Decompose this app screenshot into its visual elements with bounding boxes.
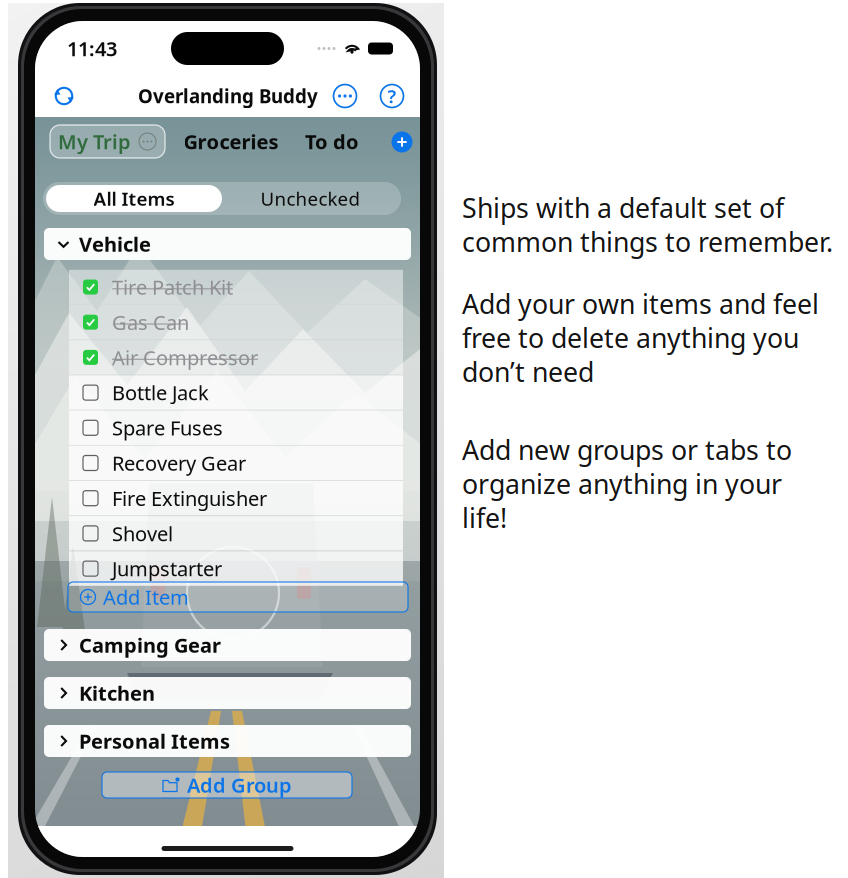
staticText: Shovel [112, 520, 173, 547]
staticText: Overlanding Buddy [138, 84, 318, 108]
staticText: don’t need [462, 354, 594, 389]
button[interactable]: Help [376, 80, 408, 112]
button[interactable]: Recovery Gear [69, 446, 403, 480]
button[interactable]: Camping Gear [44, 629, 411, 661]
staticText: Personal Items [79, 728, 230, 754]
button[interactable]: Kitchen [44, 677, 411, 709]
button[interactable]: Fire Extinguisher [69, 481, 403, 515]
staticText: Ships with a default set of [462, 190, 784, 225]
button[interactable]: Tire Patch Kit [69, 270, 403, 304]
staticText: life! [462, 500, 507, 535]
button[interactable]: More options [329, 80, 361, 112]
staticText: Add new groups or tabs to [462, 432, 792, 467]
button[interactable]: To do [299, 125, 365, 158]
button[interactable]: Add Group [102, 772, 352, 798]
button[interactable]: Shovel [69, 516, 403, 551]
button[interactable]: Spare Fuses [69, 411, 403, 445]
staticText: Recovery Gear [112, 450, 246, 476]
button[interactable]: Gas Can [69, 305, 403, 339]
staticText: 11:43 [67, 35, 117, 62]
staticText: Air Compressor [112, 344, 258, 371]
staticText: Add Item [103, 584, 189, 610]
staticText: Vehicle [79, 231, 151, 257]
staticText: Camping Gear [79, 632, 221, 658]
staticText: Groceries [183, 128, 278, 155]
staticText: Spare Fuses [112, 414, 223, 441]
button[interactable]: Personal Items [44, 725, 411, 757]
button[interactable]: Add tab [389, 129, 415, 155]
button[interactable]: All Items [46, 185, 222, 212]
staticText: Add your own items and feel [462, 286, 819, 321]
staticText: Bottle Jack [112, 379, 209, 406]
staticText: Gas Can [112, 309, 189, 335]
staticText: ? [387, 84, 396, 108]
button[interactable]: Unchecked [222, 185, 398, 212]
button[interactable]: Vehicle [44, 228, 411, 260]
staticText: All Items [93, 186, 174, 211]
button[interactable]: Air Compressor [69, 340, 403, 375]
staticText: Add Group [187, 772, 292, 798]
button[interactable]: Add Item [68, 582, 408, 612]
staticText: Jumpstarter [112, 555, 222, 582]
staticText: Unchecked [260, 186, 359, 211]
staticText: common things to remember. [462, 224, 833, 259]
staticText: organize anything in your [462, 466, 782, 501]
staticText: free to delete anything you [462, 320, 799, 355]
staticText: Fire Extinguisher [112, 485, 267, 511]
button[interactable]: My Trip [50, 125, 165, 158]
button[interactable]: Groceries [183, 125, 279, 158]
button[interactable]: Bottle Jack [69, 375, 403, 410]
staticText: Tire Patch Kit [112, 274, 233, 300]
staticText: My Trip [58, 128, 131, 155]
button[interactable]: Refresh [46, 78, 82, 114]
staticText: To do [305, 128, 359, 155]
button[interactable]: Jumpstarter [69, 551, 403, 586]
staticText: Kitchen [79, 680, 155, 706]
